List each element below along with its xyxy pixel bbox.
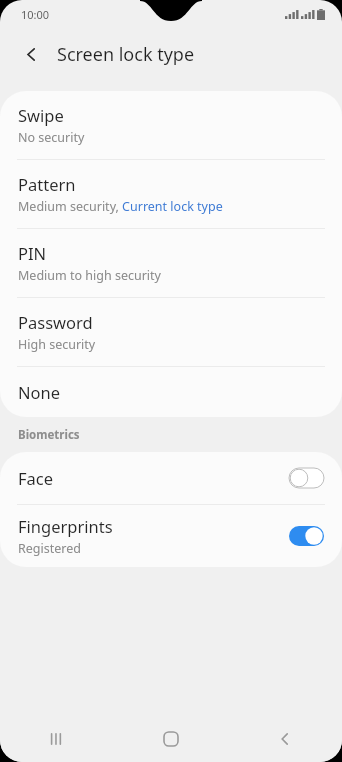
staticText: Medium to high security bbox=[18, 267, 161, 284]
button[interactable]: Pattern bbox=[0, 160, 342, 228]
staticText: No security bbox=[18, 129, 85, 146]
staticText: Pattern bbox=[18, 173, 76, 195]
staticText: Face bbox=[18, 467, 54, 489]
button[interactable]: Off bbox=[289, 468, 324, 488]
button[interactable]: PIN bbox=[0, 229, 342, 297]
button[interactable]: Swipe bbox=[0, 91, 342, 159]
staticText: 10:00 bbox=[21, 7, 50, 22]
button[interactable]: Fingerprints bbox=[0, 505, 342, 567]
button[interactable]: Back bbox=[14, 37, 48, 71]
button[interactable]: Password bbox=[0, 298, 342, 366]
staticText: Medium security, Current lock type bbox=[18, 198, 223, 215]
button[interactable]: Home bbox=[114, 716, 228, 762]
staticText: Screen lock type bbox=[57, 42, 195, 67]
staticText: Fingerprints bbox=[18, 515, 113, 537]
button[interactable]: Face bbox=[0, 452, 342, 504]
staticText: PIN bbox=[18, 242, 47, 264]
button[interactable]: Back bbox=[228, 716, 342, 762]
staticText: High security bbox=[18, 336, 96, 353]
staticText: Biometrics bbox=[18, 427, 80, 443]
staticText: None bbox=[18, 381, 61, 403]
staticText: Registered bbox=[18, 540, 81, 557]
staticText: Password bbox=[18, 311, 93, 333]
button[interactable]: None bbox=[0, 367, 342, 417]
button[interactable]: Recent apps bbox=[0, 716, 114, 762]
button[interactable]: On bbox=[289, 526, 324, 546]
staticText: Swipe bbox=[18, 104, 64, 126]
